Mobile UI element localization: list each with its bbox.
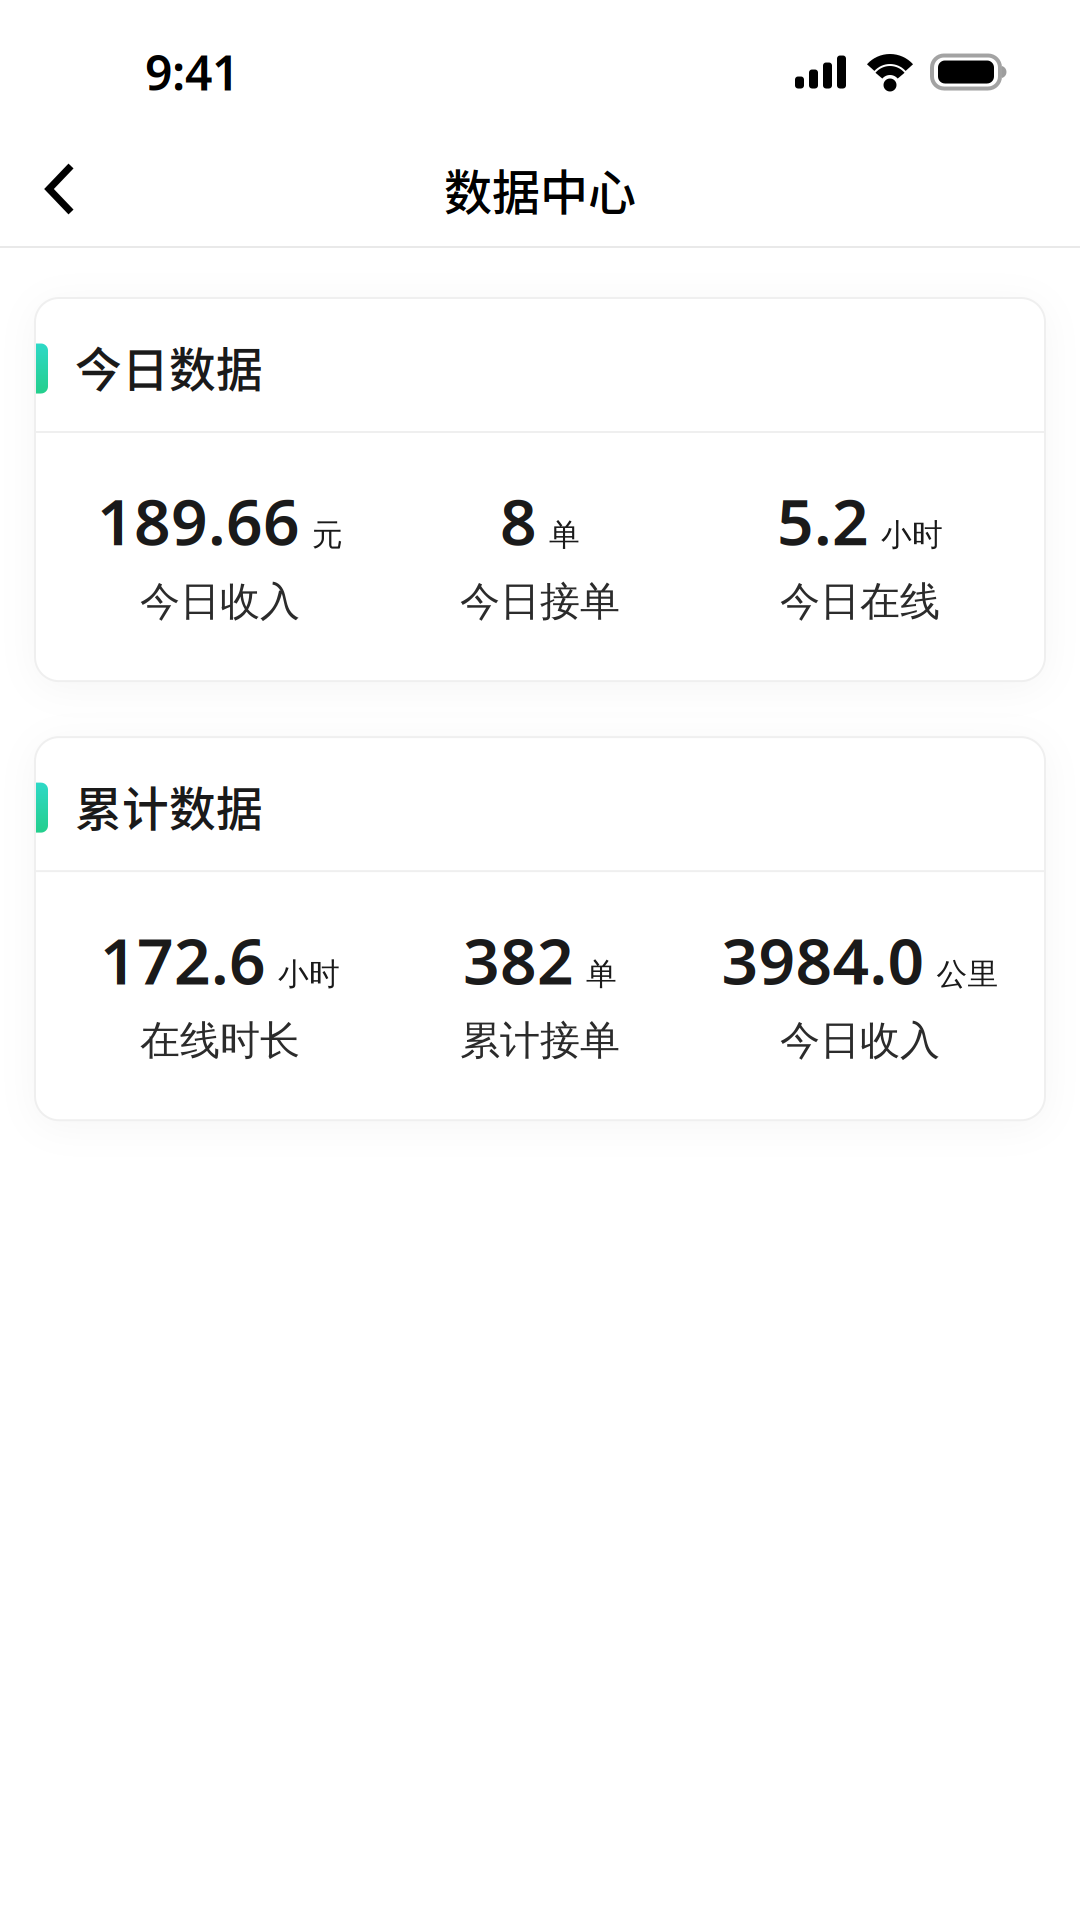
staticText: 5.2	[777, 478, 869, 563]
staticText: 今日收入	[140, 577, 300, 626]
staticText: 数据中心	[444, 154, 636, 224]
staticText: 元	[312, 516, 343, 554]
staticText: 累计接单	[460, 1016, 620, 1065]
staticText: 今日收入	[780, 1016, 940, 1065]
staticText: 小时	[881, 516, 943, 554]
staticText: 3984.0	[721, 917, 924, 1002]
staticText: 172.6	[100, 917, 266, 1002]
staticText: 小时	[278, 955, 340, 993]
staticText: 累计数据	[75, 772, 263, 839]
staticText: 今日在线	[780, 577, 940, 626]
staticText: 单	[586, 955, 617, 993]
staticText: 382	[463, 917, 574, 1002]
staticText: 今日数据	[75, 333, 263, 400]
button[interactable]: Back	[0, 133, 74, 245]
staticText: 9:41	[145, 40, 239, 104]
staticText: 在线时长	[140, 1016, 300, 1065]
staticText: 单	[549, 516, 580, 554]
staticText: 189.66	[97, 478, 300, 563]
staticText: 公里	[936, 955, 998, 993]
staticText: 今日接单	[460, 577, 620, 626]
staticText: 8	[500, 478, 537, 563]
